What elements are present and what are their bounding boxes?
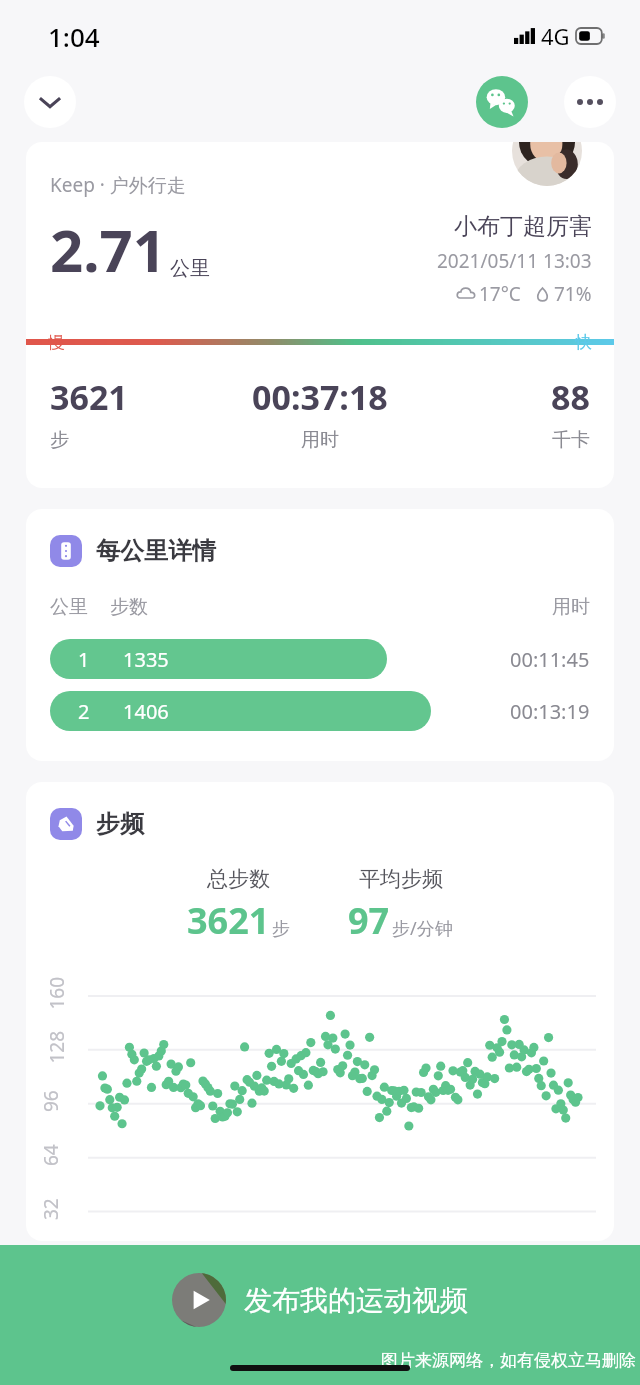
button[interactable]: Profile photo (512, 142, 582, 186)
staticText: 公里 (170, 256, 210, 281)
staticText: 4G (541, 21, 570, 51)
staticText: 1 (78, 646, 90, 673)
staticText: 64 (38, 1144, 64, 1166)
button[interactable]: 2 (50, 691, 590, 731)
staticText: 1335 (123, 646, 169, 673)
staticText: 2.71 (50, 210, 166, 289)
staticText: 1406 (123, 698, 169, 725)
button[interactable]: 每公里详情 (26, 509, 614, 761)
button[interactable]: 1 (50, 639, 590, 679)
staticText: 小布丁超厉害 (454, 212, 592, 241)
staticText: 快 (575, 332, 592, 352)
button[interactable]: 步频 (26, 782, 614, 1241)
button[interactable]: Collapse (24, 76, 76, 128)
staticText: 1:04 (48, 19, 100, 54)
staticText: 00:11:45 (510, 646, 590, 673)
staticText: 用时 (301, 428, 339, 452)
staticText: 32 (38, 1198, 64, 1220)
staticText: 发布我的运动视频 (244, 1283, 468, 1318)
staticText: 慢 (48, 332, 65, 352)
staticText: 17°C (479, 281, 521, 307)
staticText: 步 (272, 918, 290, 941)
staticText: 2021/05/11 13:03 (437, 248, 592, 274)
staticText: 00:13:19 (510, 698, 590, 725)
staticText: 公里 (50, 595, 88, 619)
button[interactable]: 发布我的运动视频 (0, 1245, 640, 1385)
staticText: 2 (78, 698, 90, 725)
staticText: 步/分钟 (392, 916, 453, 941)
button[interactable]: Keep · 户外行走 (26, 142, 614, 488)
staticText: 88 (551, 374, 590, 420)
staticText: 71% (554, 281, 592, 307)
staticText: 00:37:18 (252, 374, 388, 420)
staticText: 160 (43, 976, 69, 1009)
staticText: Keep · 户外行走 (50, 172, 186, 198)
staticText: 3621 (50, 374, 128, 420)
staticText: 千卡 (552, 428, 590, 452)
staticText: 平均步频 (359, 866, 443, 892)
staticText: 步 (50, 428, 69, 452)
staticText: 128 (43, 1030, 69, 1063)
staticText: 图片来源网络，如有侵权立马删除 (381, 1350, 636, 1371)
staticText: 步数 (110, 595, 148, 619)
staticText: 用时 (552, 595, 590, 619)
staticText: 每公里详情 (96, 536, 216, 566)
staticText: 97 (348, 896, 390, 945)
button[interactable]: Share to WeChat (476, 76, 528, 128)
staticText: 步频 (96, 809, 144, 839)
button[interactable]: More options (564, 76, 616, 128)
staticText: 96 (38, 1090, 64, 1112)
staticText: 3621 (187, 896, 270, 945)
staticText: 总步数 (207, 866, 270, 892)
